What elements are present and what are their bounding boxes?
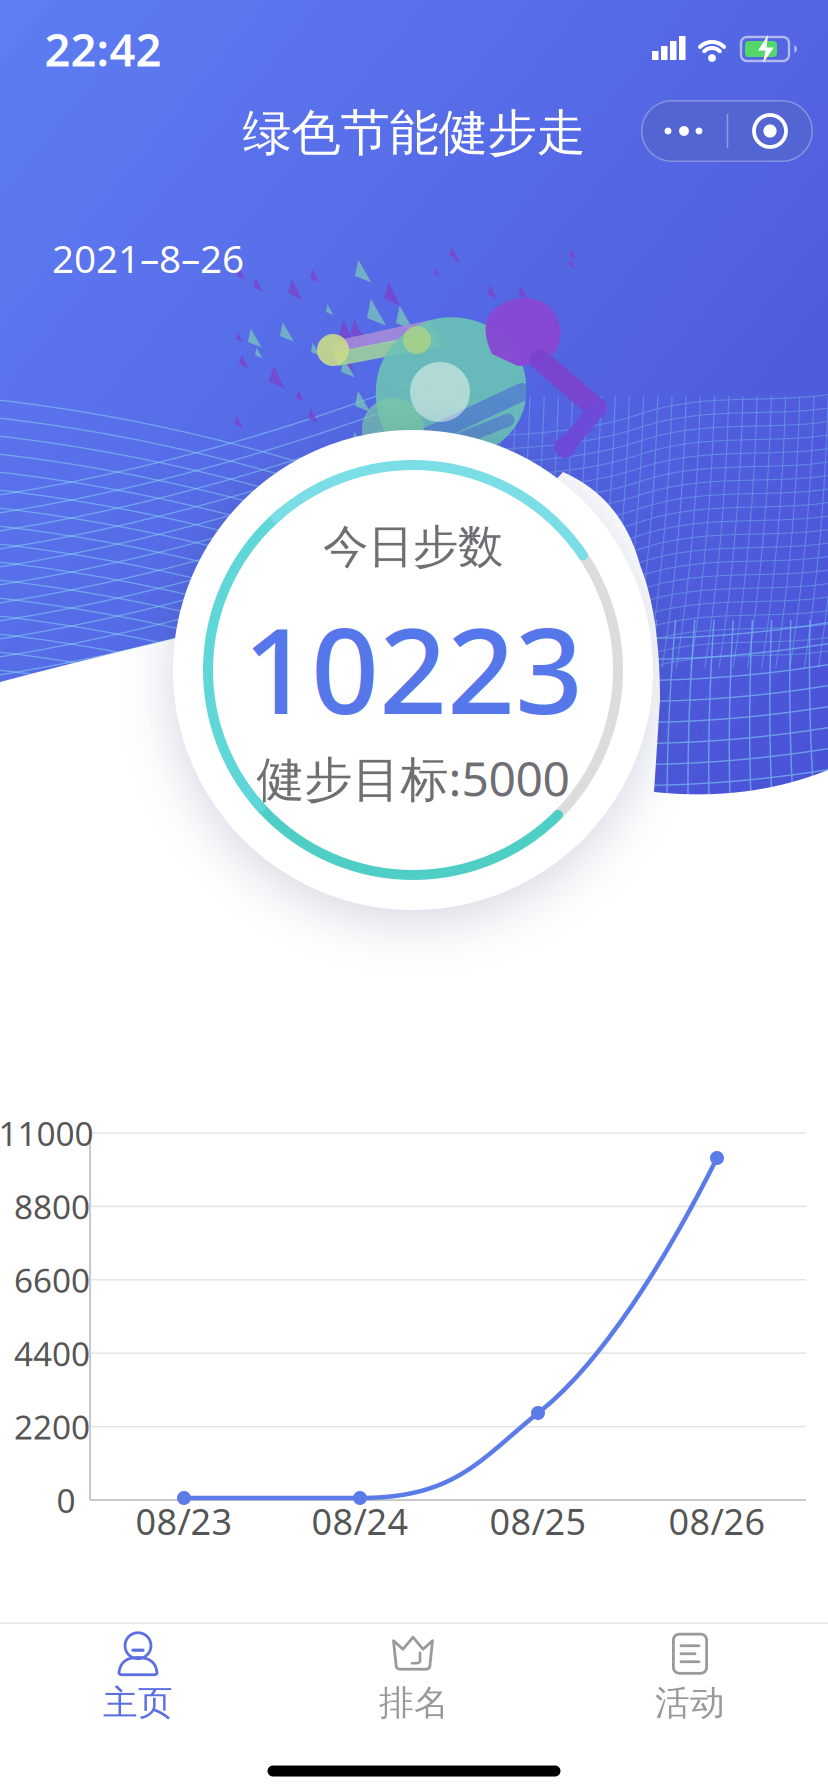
staticText: 2200 xyxy=(14,1404,90,1449)
staticText: 08/25 xyxy=(489,1497,586,1545)
staticText: 6600 xyxy=(14,1258,90,1302)
staticText: 活动 xyxy=(655,1682,725,1724)
button[interactable]: 排名 xyxy=(324,1623,504,1733)
staticText: 主页 xyxy=(103,1682,173,1724)
button[interactable]: 主页 xyxy=(48,1623,228,1733)
staticText: 4400 xyxy=(14,1331,90,1375)
staticText: 0 xyxy=(56,1478,75,1522)
staticText: 22:42 xyxy=(44,19,161,79)
staticText: 健步目标:5000 xyxy=(256,746,569,810)
button[interactable]: 关闭 xyxy=(727,100,813,162)
button[interactable]: 更多 xyxy=(641,100,727,162)
staticText: 08/26 xyxy=(668,1497,765,1545)
staticText: 11000 xyxy=(0,1111,93,1155)
staticText: 今日步数 xyxy=(323,519,503,575)
staticText: 8800 xyxy=(14,1184,90,1229)
staticText: 排名 xyxy=(379,1682,449,1724)
staticText: 10223 xyxy=(243,589,583,747)
staticText: 08/23 xyxy=(135,1497,232,1545)
staticText: 08/24 xyxy=(311,1497,408,1545)
staticText: 2021–8–26 xyxy=(52,232,244,284)
button[interactable]: 活动 xyxy=(600,1623,780,1733)
staticText: 绿色节能健步走 xyxy=(242,103,585,163)
